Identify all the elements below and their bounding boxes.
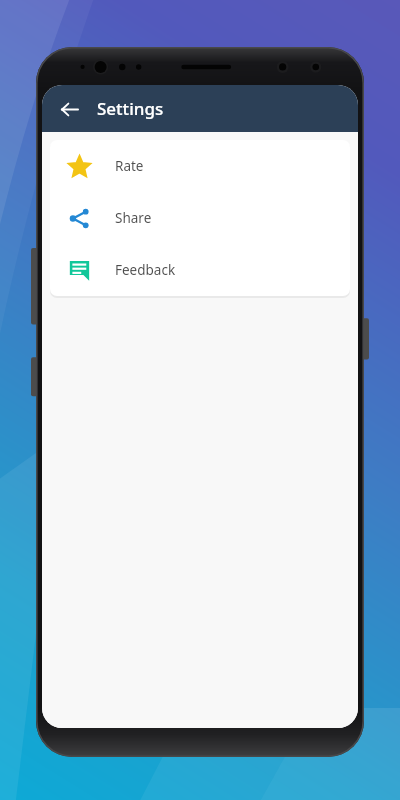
staticText: Rate (115, 157, 144, 175)
button[interactable]: Back (51, 91, 87, 127)
staticText: Feedback (115, 261, 176, 279)
staticText: Share (115, 209, 152, 227)
staticText: Settings (97, 97, 164, 120)
button[interactable]: Share (50, 192, 350, 244)
button[interactable]: Feedback (50, 244, 350, 296)
button[interactable]: Rate (50, 140, 350, 192)
